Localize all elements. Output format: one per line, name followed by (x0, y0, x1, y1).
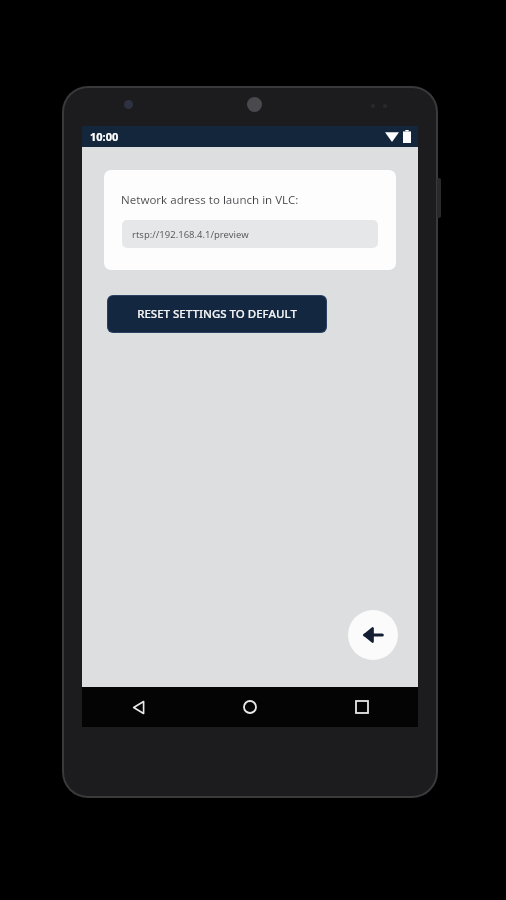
staticText: 10:00 (90, 129, 119, 144)
button[interactable]: Back (348, 610, 398, 660)
button[interactable]: RESET SETTINGS TO DEFAULT (108, 296, 326, 332)
button[interactable]: Back (82, 687, 194, 727)
button[interactable]: Home (194, 687, 306, 727)
staticText: rtsp://192.168.4.1/preview (132, 228, 249, 241)
button[interactable]: rtsp://192.168.4.1/preview (122, 220, 378, 248)
staticText: RESET SETTINGS TO DEFAULT (137, 306, 297, 322)
button[interactable]: Recent apps (306, 687, 418, 727)
staticText: Network adress to launch in VLC: (121, 192, 299, 208)
